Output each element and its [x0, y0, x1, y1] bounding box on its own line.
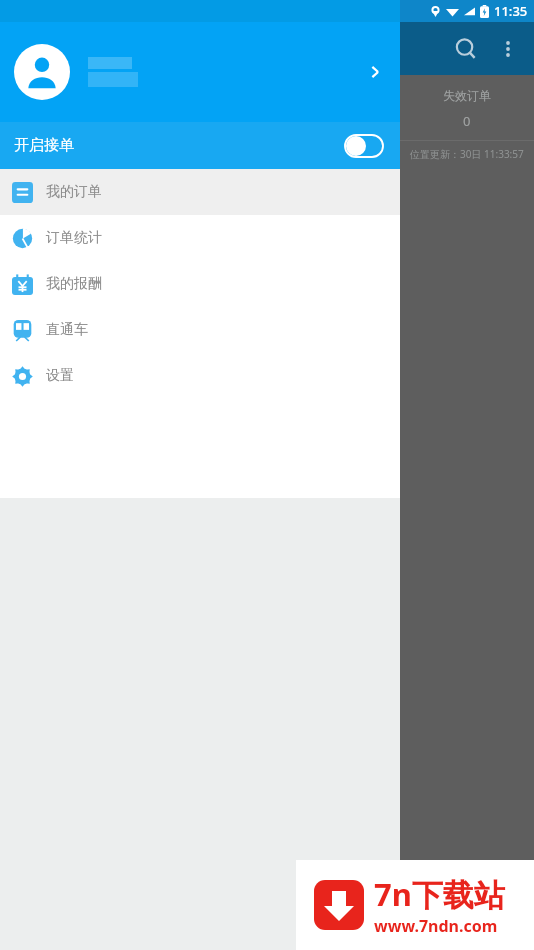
button[interactable]: 我的报酬 [0, 261, 400, 307]
staticText: 失效订单 [443, 88, 491, 103]
button[interactable]: 直通车 [0, 307, 400, 353]
staticText: www.7ndn.com [374, 915, 498, 937]
button[interactable]: Search [446, 29, 486, 69]
staticText: 设置 [46, 367, 74, 385]
button[interactable]: 我的订单 [0, 169, 400, 215]
staticText: 开启接单 [14, 136, 74, 155]
button[interactable]: 开启接单 [0, 122, 400, 169]
staticText: 订单统计 [46, 229, 102, 247]
button[interactable]: 订单统计 [0, 215, 400, 261]
staticText: 0 [463, 112, 471, 130]
button[interactable]: More options [490, 31, 526, 67]
staticText: 7n下载站 [374, 873, 505, 915]
staticText: 直通车 [46, 321, 88, 339]
button[interactable]: 设置 [0, 353, 400, 399]
button[interactable] [0, 22, 400, 122]
staticText: 我的报酬 [46, 275, 102, 293]
staticText: 我的订单 [46, 183, 102, 201]
staticText: 11:35 [494, 2, 528, 20]
staticText: 位置更新：30日 11:33:57 [410, 147, 524, 161]
